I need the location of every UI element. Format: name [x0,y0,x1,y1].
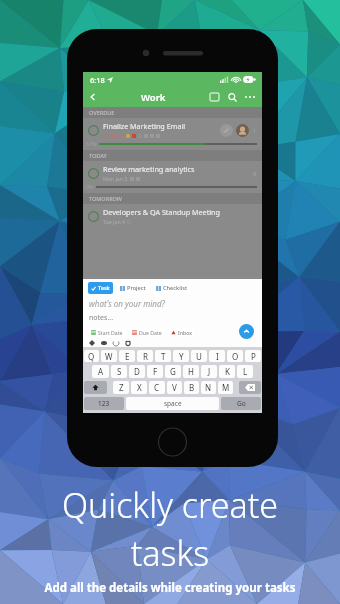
button[interactable]: F [147,365,163,378]
staticText: I [216,351,219,362]
staticText: Work [141,91,166,104]
button[interactable]: Start Date [91,329,123,336]
staticText: Checklist [163,284,188,292]
staticText: C [154,382,160,393]
button[interactable]: Go [221,397,261,410]
button[interactable]: S [111,365,127,378]
button[interactable]: W [101,350,117,362]
staticText: Inbox [178,329,192,336]
staticText: TOMORROW [89,195,123,202]
button[interactable]: Shift [84,381,107,394]
staticText: Y [179,351,184,362]
button[interactable]: R [137,350,153,362]
staticText: Start Date [98,329,123,336]
staticText: Sat Jan 1 [103,132,124,139]
button[interactable]: Sort [205,88,223,106]
staticText: 67% [86,140,97,147]
staticText: 6:18 [90,75,105,85]
staticText: space [164,399,182,408]
button[interactable]: Review marketing analytics [83,161,262,193]
button[interactable]: Z [113,381,129,394]
staticText: X [137,382,142,393]
button[interactable]: M [218,381,233,394]
staticText: F [153,366,158,377]
button[interactable]: T [155,350,171,362]
staticText: Mon Jan 3 [103,175,128,182]
button[interactable]: Submit [239,324,254,339]
staticText: Project [127,284,146,292]
staticText: Review marketing analytics [103,164,195,174]
button[interactable]: Task [91,284,110,292]
button[interactable]: space [126,397,219,410]
staticText: N [205,382,212,393]
staticText: Z [119,382,124,393]
staticText: 0 [253,170,257,177]
staticText: TODAY [89,152,107,159]
staticText: 1 [253,127,257,134]
button[interactable]: X [131,381,147,394]
button[interactable]: O [227,350,243,362]
staticText: Add all the details while creating your … [0,580,340,596]
button[interactable]: P [245,350,261,362]
button[interactable]: L [237,365,253,378]
button[interactable]: Back [83,87,103,107]
staticText: Developers & QA Standup Meeting [103,207,220,217]
staticText: L [243,366,248,377]
button[interactable]: Backspace [239,381,261,394]
staticText: Tue Jan 4 [103,218,125,225]
staticText: Due Date [139,329,162,336]
staticText: T [161,351,166,362]
staticText: M [222,382,230,393]
staticText: H [188,366,194,377]
button[interactable]: Finalize Marketing Email Campaign [83,118,262,150]
staticText: U [196,351,202,362]
button[interactable]: U [191,350,207,362]
button[interactable]: H [183,365,199,378]
staticText: Q [88,351,95,362]
staticText: E [125,351,130,362]
staticText: D [134,366,140,377]
staticText: Go [237,399,246,408]
staticText: J [208,366,211,377]
staticText: B [189,382,195,393]
button[interactable]: Inbox [171,329,192,336]
staticText: notes... [89,313,114,323]
staticText: S [117,366,122,377]
staticText: OVERDUE [89,109,115,116]
staticText: what's on your mind? [89,298,165,309]
button[interactable]: C [149,381,165,394]
staticText: V [172,382,177,393]
staticText: G [170,366,176,377]
staticText: tasks [0,530,340,576]
button[interactable]: V [167,381,182,394]
button[interactable]: Q [84,350,99,362]
button[interactable]: D [129,365,145,378]
staticText: K [225,366,230,377]
staticText: Finalize Marketing Email Campaign [103,121,220,131]
staticText: R [143,351,148,362]
button[interactable]: Due Date [132,329,162,336]
button[interactable]: More options [241,88,259,106]
staticText: A [98,366,104,377]
button[interactable]: I [209,350,225,362]
button[interactable]: G [165,365,181,378]
staticText: 123 [98,399,110,408]
button[interactable]: K [219,365,235,378]
staticText: O [232,351,239,362]
button[interactable]: B [184,381,199,394]
button[interactable]: A [92,365,109,378]
staticText: 0% [86,183,94,190]
button[interactable]: Y [173,350,189,362]
button[interactable]: E [119,350,135,362]
button[interactable]: N [201,381,216,394]
staticText: W [105,351,113,362]
button[interactable]: 123 [84,397,124,410]
staticText: P [251,351,256,362]
button[interactable]: J [201,365,217,378]
staticText: Task [98,284,110,292]
button[interactable]: Checklist [156,284,188,292]
button[interactable]: Developers & QA Standup Meeting [88,207,262,225]
button[interactable]: Project [120,284,146,292]
button[interactable]: Search [223,88,241,106]
staticText: Quickly create [0,482,340,528]
